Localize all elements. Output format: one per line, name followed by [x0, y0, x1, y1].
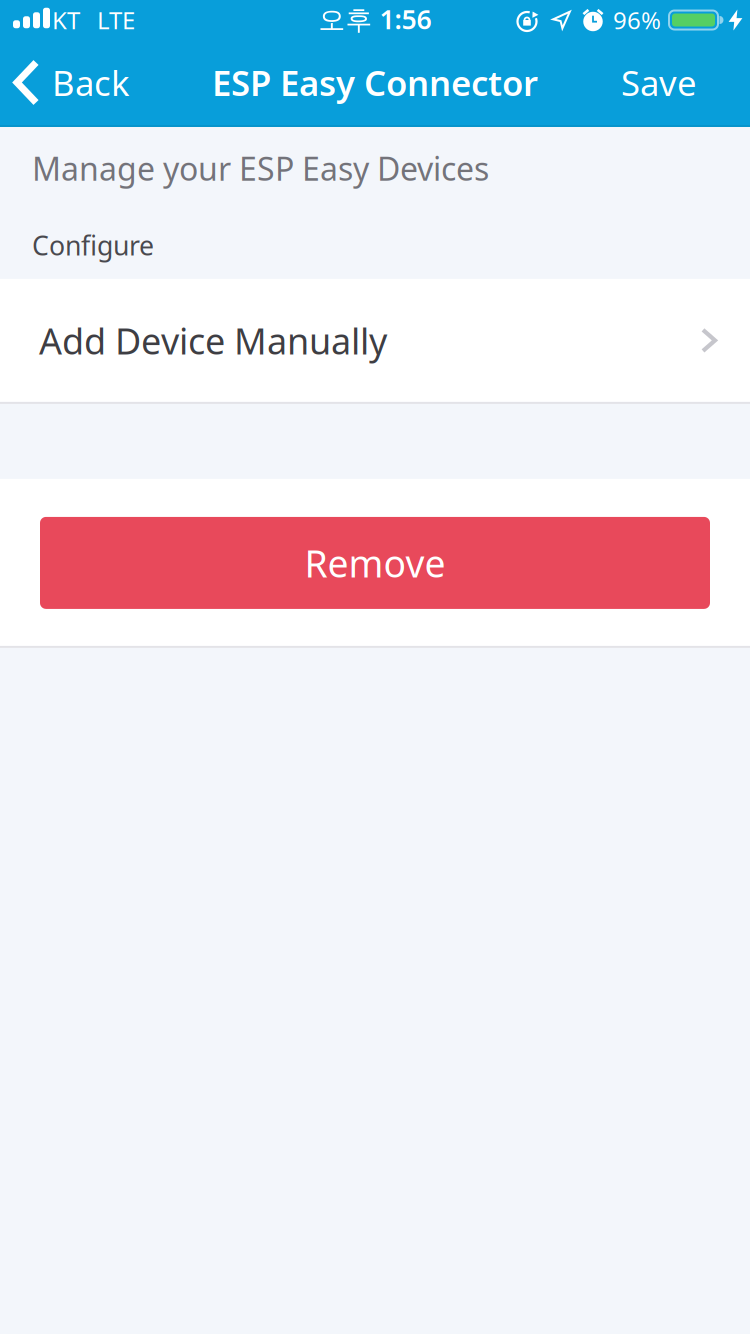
staticText: ESP Easy Connector: [212, 59, 538, 105]
staticText: KT: [52, 4, 80, 36]
staticText: 오후 1:56: [318, 1, 431, 37]
staticText: Configure: [32, 227, 154, 263]
staticText: Save: [621, 59, 697, 105]
staticText: Back: [52, 59, 130, 105]
staticText: Remove: [304, 538, 445, 588]
staticText: LTE: [97, 4, 135, 36]
staticText: 96%: [613, 4, 661, 36]
button[interactable]: Back: [0, 59, 130, 105]
button[interactable]: Add Device Manually: [0, 279, 750, 404]
button[interactable]: Save: [621, 59, 750, 105]
staticText: Add Device Manually: [39, 316, 387, 364]
button[interactable]: Remove: [40, 517, 710, 609]
staticText: Manage your ESP Easy Devices: [32, 147, 489, 189]
